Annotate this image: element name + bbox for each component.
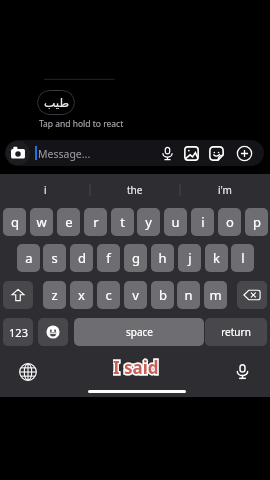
staticText: s bbox=[51, 249, 58, 267]
staticText: r bbox=[93, 213, 99, 231]
button[interactable]: s bbox=[43, 244, 66, 272]
button[interactable]: t bbox=[111, 208, 134, 236]
button[interactable]: z bbox=[43, 281, 66, 309]
button[interactable]: j bbox=[178, 244, 201, 272]
button[interactable]: i'm bbox=[180, 174, 270, 206]
staticText: p bbox=[253, 213, 261, 231]
button[interactable]: o bbox=[218, 208, 241, 236]
staticText: u bbox=[171, 213, 180, 231]
staticText: Message... bbox=[38, 147, 91, 161]
staticText: z bbox=[51, 286, 58, 304]
staticText: d bbox=[78, 249, 86, 267]
button[interactable]: More options bbox=[236, 145, 253, 162]
button[interactable]: Voice message bbox=[159, 145, 176, 162]
staticText: I said bbox=[113, 356, 159, 376]
button[interactable]: r bbox=[84, 208, 107, 236]
button[interactable]: m bbox=[204, 281, 227, 309]
staticText: Tap and hold to react bbox=[39, 118, 124, 130]
staticText: k bbox=[213, 249, 220, 267]
staticText: n bbox=[184, 286, 193, 304]
button[interactable]: w bbox=[30, 208, 53, 236]
staticText: i bbox=[44, 183, 47, 197]
staticText: m bbox=[209, 286, 222, 304]
staticText: e bbox=[65, 213, 73, 231]
staticText: y bbox=[145, 213, 152, 231]
button[interactable]: x bbox=[70, 281, 93, 309]
button[interactable]: Shift bbox=[3, 281, 33, 309]
button[interactable]: u bbox=[164, 208, 187, 236]
staticText: I said bbox=[113, 356, 159, 376]
button[interactable]: p bbox=[245, 208, 268, 236]
staticText: the bbox=[127, 183, 143, 197]
button[interactable]: f bbox=[97, 244, 120, 272]
button[interactable]: d bbox=[70, 244, 93, 272]
button[interactable]: Stickers bbox=[208, 145, 225, 162]
staticText: x bbox=[78, 286, 85, 304]
button[interactable]: i bbox=[191, 208, 214, 236]
button[interactable]: 123 bbox=[3, 318, 33, 346]
button[interactable]: طيب bbox=[37, 90, 75, 115]
staticText: طيب bbox=[44, 96, 69, 110]
button[interactable]: return bbox=[205, 318, 267, 346]
button[interactable]: q bbox=[3, 208, 26, 236]
staticText: c bbox=[105, 286, 112, 304]
button[interactable]: k bbox=[205, 244, 228, 272]
button[interactable]: Voice input bbox=[233, 362, 252, 381]
staticText: a bbox=[25, 249, 33, 267]
staticText: i bbox=[201, 213, 205, 231]
staticText: o bbox=[226, 213, 234, 231]
button[interactable]: Backspace bbox=[237, 281, 267, 309]
button[interactable]: space bbox=[74, 318, 204, 346]
staticText: h bbox=[158, 249, 167, 267]
button[interactable]: g bbox=[124, 244, 147, 272]
button[interactable]: e bbox=[57, 208, 80, 236]
button[interactable]: a bbox=[17, 244, 40, 272]
staticText: j bbox=[188, 249, 192, 267]
staticText: v bbox=[132, 286, 139, 304]
button[interactable]: n bbox=[177, 281, 200, 309]
staticText: f bbox=[106, 249, 111, 267]
button[interactable]: Camera bbox=[6, 141, 30, 165]
button[interactable]: y bbox=[137, 208, 160, 236]
staticText: 123 bbox=[9, 325, 28, 340]
button[interactable]: b bbox=[151, 281, 174, 309]
button[interactable]: h bbox=[151, 244, 174, 272]
button[interactable]: Emoji bbox=[38, 318, 68, 346]
button[interactable]: Tap and hold to react bbox=[39, 118, 124, 130]
staticText: g bbox=[132, 249, 140, 267]
staticText: q bbox=[11, 213, 19, 231]
button[interactable]: i bbox=[0, 174, 90, 206]
staticText: l bbox=[241, 249, 245, 267]
button[interactable]: Gallery bbox=[183, 145, 200, 162]
staticText: space bbox=[126, 325, 153, 339]
button[interactable]: c bbox=[97, 281, 120, 309]
button[interactable]: v bbox=[124, 281, 147, 309]
staticText: w bbox=[36, 213, 47, 231]
staticText: return bbox=[221, 325, 251, 339]
staticText: i'm bbox=[218, 183, 232, 197]
button[interactable]: l bbox=[231, 244, 254, 272]
staticText: b bbox=[159, 286, 167, 304]
button[interactable]: the bbox=[90, 174, 180, 206]
button[interactable]: Change keyboard bbox=[19, 363, 37, 381]
staticText: t bbox=[120, 213, 125, 231]
